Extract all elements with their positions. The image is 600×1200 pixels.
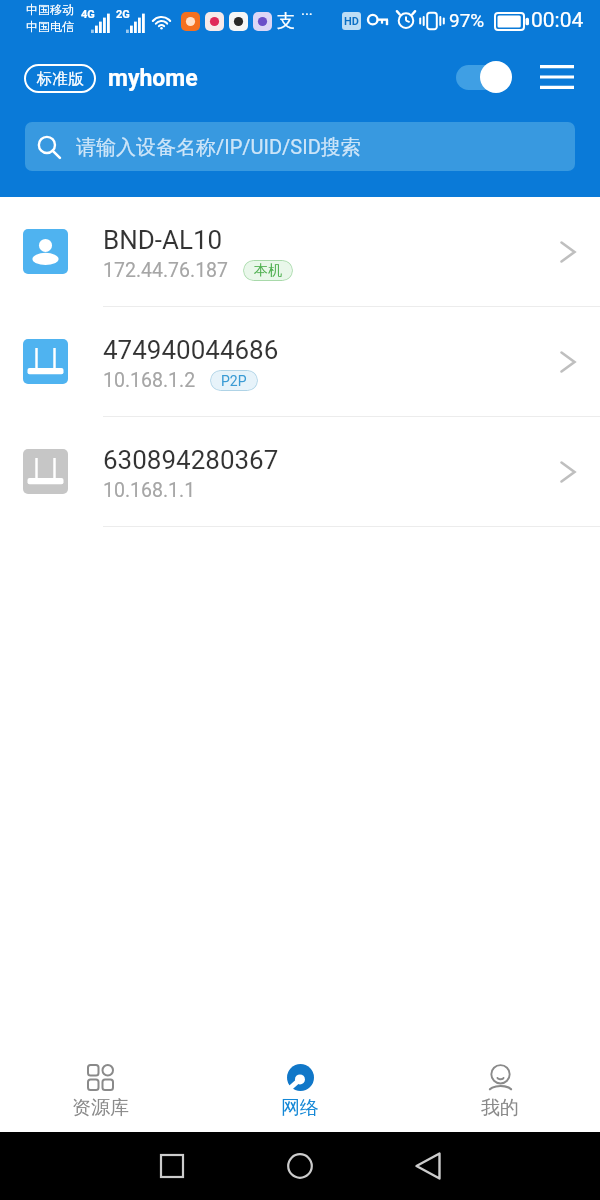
staticText: 97% — [449, 9, 485, 31]
staticText: 00:04 — [531, 8, 584, 33]
staticText: 网络 — [281, 1096, 319, 1120]
staticText: 请输入设备名称/IP/UID/SID搜索 — [76, 135, 361, 160]
staticText: myhome — [108, 65, 198, 92]
staticText: 标准版 — [37, 69, 84, 89]
button[interactable]: 630894280367 — [0, 417, 600, 526]
staticText: 中国电信 — [26, 19, 74, 34]
staticText: ··· — [301, 6, 313, 24]
staticText: BND-AL10 — [103, 225, 223, 255]
staticText: 2G — [116, 8, 130, 21]
button[interactable]: 网络 — [200, 1022, 400, 1132]
button[interactable]: 474940044686 — [0, 307, 600, 416]
staticText: 支 — [277, 10, 295, 33]
button[interactable]: Toggle connection — [452, 57, 516, 97]
staticText: HD — [344, 15, 359, 28]
button[interactable]: BND-AL10 — [0, 197, 600, 306]
staticText: 172.44.76.187 — [103, 259, 229, 282]
staticText: 474940044686 — [103, 335, 279, 365]
staticText: 4G — [81, 8, 95, 21]
staticText: 我的 — [481, 1096, 519, 1120]
button[interactable]: 我的 — [400, 1022, 600, 1132]
staticText: 资源库 — [72, 1096, 129, 1120]
button[interactable]: Home — [276, 1142, 324, 1190]
staticText: 中国移动 — [26, 2, 74, 17]
staticText: 630894280367 — [103, 445, 279, 475]
button[interactable]: 资源库 — [0, 1022, 200, 1132]
button[interactable]: 请输入设备名称/IP/UID/SID搜索 — [25, 122, 575, 171]
staticText: P2P — [221, 373, 247, 389]
button[interactable]: Recents — [148, 1142, 196, 1190]
button[interactable]: Menu — [534, 58, 579, 96]
staticText: 10.168.1.2 — [103, 369, 196, 392]
button[interactable]: Back — [404, 1142, 452, 1190]
staticText: 10.168.1.1 — [103, 479, 196, 502]
staticText: 本机 — [254, 262, 282, 280]
